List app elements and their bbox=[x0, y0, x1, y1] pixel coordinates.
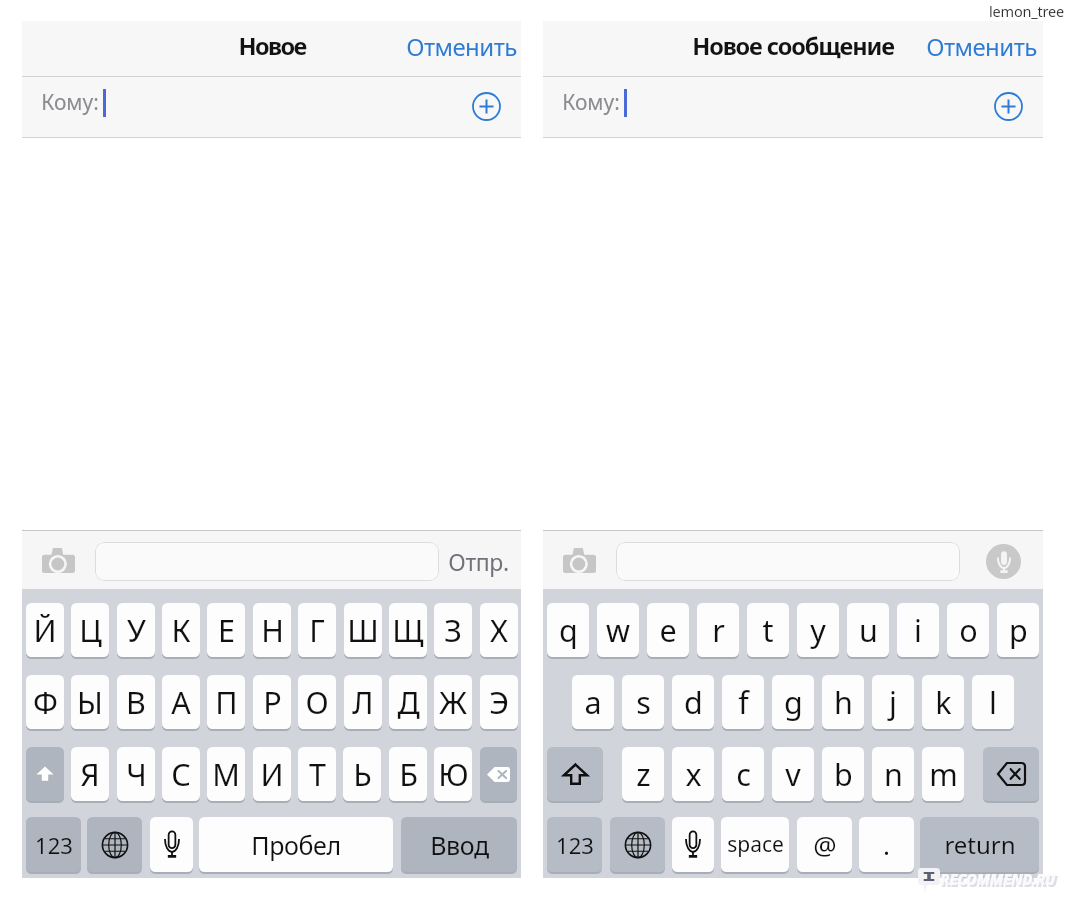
staticText: Ь bbox=[353, 753, 372, 795]
staticText: Кому: bbox=[41, 88, 99, 117]
button[interactable]: Я bbox=[71, 747, 109, 801]
button[interactable]: . bbox=[859, 817, 914, 872]
staticText: a bbox=[584, 681, 602, 723]
button[interactable]: Э bbox=[480, 675, 518, 729]
button[interactable]: c bbox=[722, 747, 764, 801]
button[interactable] bbox=[616, 542, 960, 581]
button[interactable]: 123 bbox=[26, 817, 81, 872]
button[interactable]: m bbox=[922, 747, 964, 801]
button[interactable] bbox=[95, 542, 439, 581]
button[interactable]: Shift bbox=[26, 747, 64, 801]
staticText: Новое сообщение bbox=[692, 30, 894, 62]
staticText: n bbox=[884, 753, 903, 795]
staticText: j bbox=[889, 681, 897, 723]
button[interactable]: q bbox=[547, 603, 589, 657]
button[interactable]: Add recipient bbox=[990, 88, 1026, 124]
button[interactable]: Ь bbox=[343, 747, 381, 801]
button[interactable]: П bbox=[207, 675, 245, 729]
button[interactable]: У bbox=[117, 603, 155, 657]
button[interactable]: f bbox=[722, 675, 764, 729]
staticText: Отменить bbox=[406, 30, 517, 63]
button[interactable]: h bbox=[822, 675, 864, 729]
button[interactable]: Backspace bbox=[983, 747, 1039, 801]
button[interactable]: Б bbox=[389, 747, 427, 801]
button[interactable]: В bbox=[117, 675, 155, 729]
button[interactable]: Add recipient bbox=[468, 88, 504, 124]
button[interactable]: Е bbox=[207, 603, 245, 657]
button[interactable]: Ф bbox=[26, 675, 64, 729]
button[interactable]: i bbox=[897, 603, 939, 657]
button[interactable]: return bbox=[920, 817, 1039, 872]
button[interactable]: А bbox=[162, 675, 200, 729]
button[interactable]: Ч bbox=[117, 747, 155, 801]
button[interactable]: Camera bbox=[563, 548, 596, 573]
button[interactable]: Dictate bbox=[150, 817, 193, 872]
button[interactable]: Й bbox=[26, 603, 64, 657]
button[interactable]: О bbox=[298, 675, 336, 729]
button[interactable]: g bbox=[772, 675, 814, 729]
button[interactable]: Ц bbox=[71, 603, 109, 657]
button[interactable]: Отменить bbox=[406, 30, 517, 63]
button[interactable]: Новое bbox=[238, 30, 306, 62]
button[interactable]: Ю bbox=[434, 747, 472, 801]
button[interactable]: k bbox=[922, 675, 964, 729]
staticText: Отпр. bbox=[448, 546, 509, 577]
button[interactable]: r bbox=[697, 603, 739, 657]
button[interactable]: z bbox=[622, 747, 664, 801]
button[interactable]: Г bbox=[298, 603, 336, 657]
button[interactable]: И bbox=[253, 747, 291, 801]
button[interactable]: j bbox=[872, 675, 914, 729]
button[interactable]: w bbox=[597, 603, 639, 657]
button[interactable]: Н bbox=[253, 603, 291, 657]
button[interactable]: Change language bbox=[610, 817, 665, 872]
button[interactable]: Ш bbox=[344, 603, 382, 657]
button[interactable]: o bbox=[947, 603, 989, 657]
button[interactable]: s bbox=[622, 675, 664, 729]
button[interactable]: Backspace bbox=[480, 747, 517, 801]
button[interactable]: Shift bbox=[547, 747, 603, 801]
button[interactable]: Д bbox=[389, 675, 427, 729]
staticText: Кому: bbox=[562, 88, 620, 117]
button[interactable]: Т bbox=[298, 747, 336, 801]
button[interactable]: Ж bbox=[434, 675, 472, 729]
button[interactable]: Ы bbox=[71, 675, 109, 729]
button[interactable]: Voice input bbox=[986, 544, 1021, 579]
button[interactable]: Dictate bbox=[672, 817, 714, 872]
button[interactable]: d bbox=[672, 675, 714, 729]
staticText: Ф bbox=[33, 681, 58, 723]
button[interactable]: 123 bbox=[547, 817, 602, 872]
button[interactable]: З bbox=[434, 603, 472, 657]
button[interactable]: p bbox=[997, 603, 1039, 657]
button[interactable]: Новое сообщение bbox=[692, 30, 894, 62]
button[interactable]: e bbox=[647, 603, 689, 657]
staticText: Ц bbox=[79, 609, 102, 651]
button[interactable]: b bbox=[822, 747, 864, 801]
button[interactable]: y bbox=[797, 603, 839, 657]
button[interactable]: К bbox=[162, 603, 200, 657]
other: Dictate bbox=[164, 831, 180, 858]
button[interactable]: Пробел bbox=[199, 817, 393, 872]
button[interactable]: М bbox=[207, 747, 245, 801]
button[interactable]: v bbox=[772, 747, 814, 801]
button[interactable]: @ bbox=[797, 817, 852, 872]
button[interactable]: Ввод bbox=[401, 817, 517, 872]
button[interactable]: l bbox=[972, 675, 1014, 729]
button[interactable]: Х bbox=[480, 603, 518, 657]
button[interactable]: Щ bbox=[389, 603, 427, 657]
button[interactable]: Camera bbox=[42, 548, 75, 573]
button[interactable]: n bbox=[872, 747, 914, 801]
button[interactable]: t bbox=[747, 603, 789, 657]
button[interactable]: С bbox=[162, 747, 200, 801]
button[interactable]: x bbox=[672, 747, 714, 801]
button[interactable]: Отпр. bbox=[445, 542, 511, 581]
button[interactable]: space bbox=[721, 817, 789, 872]
button[interactable]: a bbox=[572, 675, 614, 729]
button[interactable]: Л bbox=[344, 675, 382, 729]
staticText: Ввод bbox=[430, 828, 489, 862]
staticText: К bbox=[171, 609, 191, 651]
button[interactable]: Отменить bbox=[926, 30, 1037, 63]
button[interactable]: Р bbox=[253, 675, 291, 729]
button[interactable]: u bbox=[847, 603, 889, 657]
button[interactable]: Change language bbox=[87, 817, 142, 872]
staticText: d bbox=[684, 681, 703, 723]
